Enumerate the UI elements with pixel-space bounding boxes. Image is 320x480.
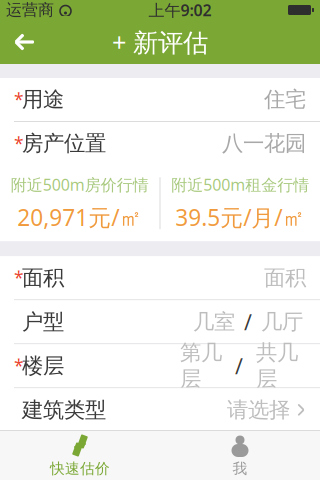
button[interactable]: * (0, 344, 320, 387)
staticText: / (235, 352, 243, 380)
staticText: 几厅 (261, 309, 303, 335)
staticText: 上午9:02 (148, 0, 211, 21)
staticText: 建筑类型 (22, 397, 106, 423)
button[interactable]: * (0, 78, 320, 121)
button[interactable]: 附近500m租金行情 (160, 165, 320, 241)
staticText: * (14, 132, 24, 155)
staticText: 请选择 (227, 397, 290, 423)
staticText: 39.5元/月/㎡ (175, 202, 305, 232)
button[interactable]: * (0, 122, 320, 165)
staticText: 附近500m房价行情 (11, 174, 149, 195)
button[interactable]: 建筑类型 (0, 388, 320, 431)
staticText: 房产位置 (22, 130, 106, 157)
staticText: 第几层 (180, 340, 222, 392)
staticText: 我 (232, 459, 247, 477)
staticText: / (244, 308, 252, 336)
staticText: + 新评估 (112, 25, 208, 59)
button[interactable]: 户型 (0, 300, 320, 343)
staticText: 面积 (264, 265, 306, 291)
staticText: 共几层 (256, 340, 298, 392)
button[interactable]: * (0, 256, 320, 299)
staticText: 20,971元/㎡ (17, 202, 142, 232)
staticText: 运营商 (6, 0, 54, 20)
button[interactable]: 附近500m房价行情 (0, 165, 159, 241)
staticText: 几室 (193, 309, 235, 335)
staticText: 面积 (22, 265, 64, 291)
staticText: * (14, 354, 24, 377)
button[interactable]: 我 (160, 429, 320, 480)
staticText: 用途 (22, 86, 64, 113)
staticText: * (14, 88, 24, 111)
button[interactable]: 返回 (0, 22, 48, 62)
staticText: 住宅 (264, 86, 306, 113)
staticText: 户型 (22, 309, 64, 335)
staticText: * (14, 266, 24, 289)
staticText: 附近500m租金行情 (171, 174, 309, 195)
staticText: 楼层 (22, 353, 64, 379)
button[interactable]: 快速估价 (0, 429, 160, 480)
staticText: 快速估价 (50, 459, 110, 477)
staticText: 八一花园 (222, 130, 306, 157)
